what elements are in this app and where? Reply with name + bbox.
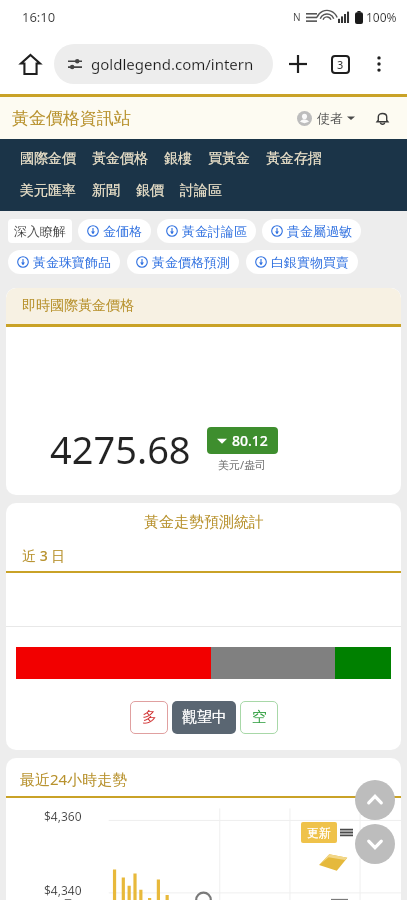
staticText: $4,340 xyxy=(44,882,82,898)
button[interactable]: 美元匯率 xyxy=(12,175,84,207)
staticText: 黃金討論區 xyxy=(182,223,247,239)
button[interactable]: 白銀實物買賣 xyxy=(246,250,358,274)
button[interactable]: 多 xyxy=(130,701,168,734)
button[interactable]: More options xyxy=(363,48,395,80)
staticText: 黃金價格預測 xyxy=(152,254,230,270)
staticText: 貴金屬過敏 xyxy=(287,223,352,239)
button[interactable]: 黃金存摺 xyxy=(258,143,330,175)
button[interactable]: 銀價 xyxy=(128,175,172,207)
button[interactable]: Scroll to bottom xyxy=(355,824,395,864)
staticText: 黃金走勢預測統計 xyxy=(144,513,264,532)
button[interactable]: 討論區 xyxy=(172,175,230,207)
staticText: $4,360 xyxy=(44,808,82,824)
button[interactable]: Notifications xyxy=(369,105,395,131)
staticText: 即時國際黃金價格 xyxy=(22,297,134,315)
button[interactable]: 黃金討論區 xyxy=(157,219,256,243)
button[interactable]: 空 xyxy=(240,701,278,734)
staticText: 100% xyxy=(366,9,397,25)
staticText: 白銀實物買賣 xyxy=(271,254,349,270)
button[interactable]: 即時國際黃金價格 xyxy=(6,288,401,327)
staticText: 美元/盎司 xyxy=(218,457,267,472)
button[interactable]: 黃金價格 xyxy=(84,143,156,175)
staticText: 使者 xyxy=(317,110,343,126)
staticText: 黃金珠寶飾品 xyxy=(33,254,111,270)
staticText: 空 xyxy=(252,708,267,727)
button[interactable]: 使者 xyxy=(293,110,359,126)
staticText: 3 xyxy=(337,57,344,72)
staticText: 80.12 xyxy=(232,431,268,450)
button[interactable]: goldlegend.com/intern xyxy=(54,44,273,84)
staticText: 4275.68 xyxy=(50,423,191,475)
staticText: N xyxy=(293,10,301,24)
staticText: 多 xyxy=(142,708,157,727)
button[interactable]: 金価格 xyxy=(78,219,151,243)
button[interactable]: 最近24小時走勢 xyxy=(6,758,401,798)
button[interactable]: Home xyxy=(12,46,48,82)
button[interactable]: 觀望中 xyxy=(172,701,236,734)
button[interactable]: 新聞 xyxy=(84,175,128,207)
button[interactable]: Tabs xyxy=(323,47,357,81)
staticText: 最近24小時走勢 xyxy=(20,769,128,789)
staticText: 深入瞭解 xyxy=(14,223,66,239)
button[interactable]: New tab xyxy=(281,47,315,81)
staticText: 金価格 xyxy=(103,223,142,239)
staticText: 觀望中 xyxy=(182,708,227,727)
staticText: 16:10 xyxy=(22,8,56,26)
staticText: 近 3 日 xyxy=(22,546,66,565)
button[interactable]: 近 3 日 xyxy=(6,540,401,573)
button[interactable]: 黃金價格預測 xyxy=(127,250,239,274)
button[interactable]: 銀樓 xyxy=(156,143,200,175)
staticText: goldlegend.com/intern xyxy=(91,54,254,74)
button[interactable]: 更新 xyxy=(301,822,337,843)
button[interactable]: 貴金屬過敏 xyxy=(262,219,361,243)
button[interactable]: 黃金價格資訊站 xyxy=(12,108,131,129)
button[interactable]: 黃金珠寶飾品 xyxy=(8,250,120,274)
button[interactable]: 國際金價 xyxy=(12,143,84,175)
button[interactable]: Scroll to top xyxy=(355,780,395,820)
button[interactable]: 買黃金 xyxy=(200,143,258,175)
button[interactable]: 深入瞭解 xyxy=(8,219,72,243)
staticText: 更新 xyxy=(307,825,331,840)
